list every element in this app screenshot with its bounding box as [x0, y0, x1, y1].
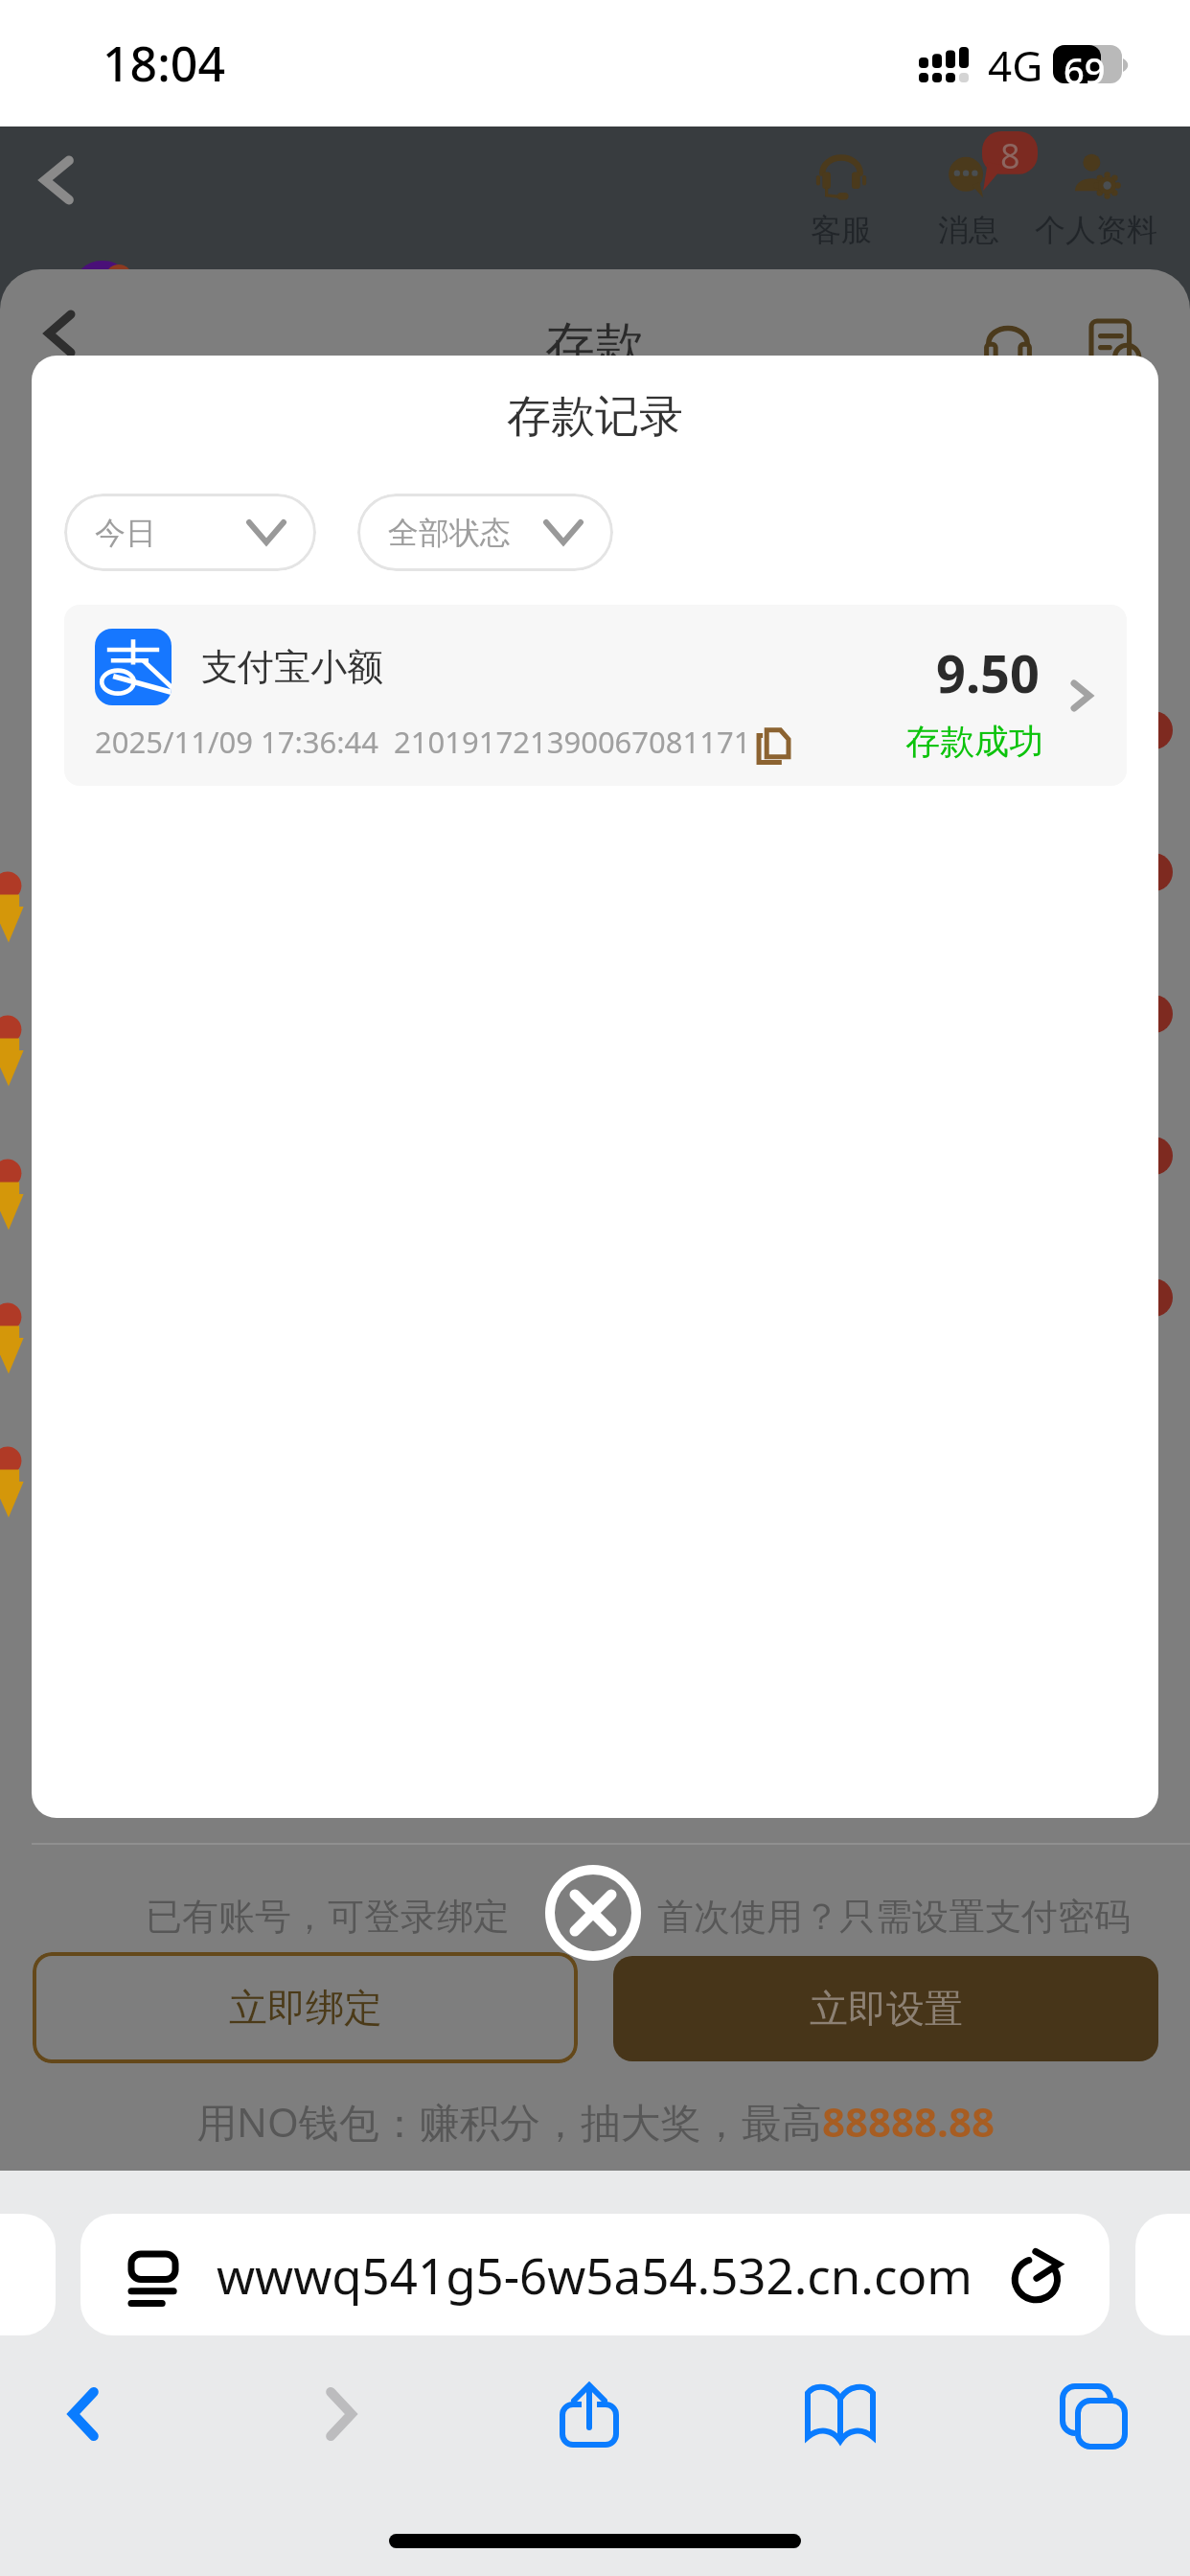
button[interactable]: Page settings: [80, 2214, 1110, 2335]
button[interactable]: 全部状态: [357, 494, 613, 571]
button[interactable]: Bookmarks: [785, 2358, 896, 2470]
staticText: 立即设置: [810, 1985, 963, 2033]
staticText: 8: [1000, 132, 1020, 179]
staticText: 全部状态: [388, 514, 511, 552]
staticText: 首次使用？只需设置支付密码: [657, 1894, 1131, 1940]
button[interactable]: 个人资料: [1010, 148, 1182, 249]
button[interactable]: Back: [28, 2358, 139, 2470]
button[interactable]: 支付宝小额: [64, 605, 1127, 786]
staticText: 立即绑定: [229, 1984, 382, 2032]
button[interactable]: 客服: [755, 148, 927, 249]
button[interactable]: Share: [534, 2358, 645, 2470]
button[interactable]: Tabs: [1037, 2358, 1148, 2470]
button[interactable]: Back: [11, 134, 103, 226]
staticText: 支付宝小额: [201, 644, 383, 690]
staticText: 存款成功: [905, 720, 1043, 763]
staticText: 88888.88: [822, 2094, 995, 2149]
button[interactable]: 立即绑定: [33, 1952, 578, 2063]
staticText: 存款记录: [32, 389, 1158, 445]
other: Reload: [1012, 2248, 1064, 2302]
staticText: 今日: [95, 514, 156, 552]
staticText: 用NO钱包：赚积分，抽大奖，最高: [196, 2094, 822, 2149]
staticText: 2025/11/09 17:36:44 21019172139006708117…: [95, 722, 751, 762]
staticText: 消息: [938, 211, 999, 249]
staticText: 18:04: [103, 31, 225, 96]
button[interactable]: 立即设置: [613, 1956, 1158, 2061]
staticText: 69: [1064, 45, 1106, 83]
staticText: 客服: [811, 211, 872, 249]
button[interactable]: 今日: [64, 494, 316, 571]
staticText: 已有账号，可登录绑定: [146, 1894, 510, 1940]
other: Page settings: [131, 2254, 175, 2304]
staticText: 9.50: [936, 637, 1040, 708]
button[interactable]: Forward: [286, 2358, 397, 2470]
staticText: 4G: [988, 36, 1043, 94]
staticText: 个人资料: [1035, 211, 1157, 249]
staticText: 存款: [545, 314, 645, 378]
staticText: wwwq541g5-6w5a54.532.cn.com: [217, 2242, 973, 2308]
button[interactable]: Close: [526, 1846, 660, 1980]
button[interactable]: 消息: [882, 148, 1055, 249]
